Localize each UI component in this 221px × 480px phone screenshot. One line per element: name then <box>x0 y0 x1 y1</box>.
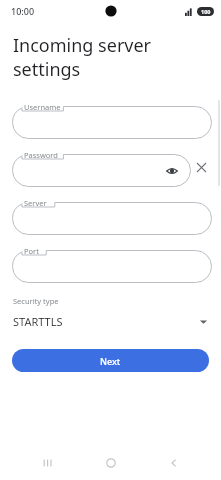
button[interactable]: Server <box>12 195 212 235</box>
button[interactable]: Username <box>12 99 212 139</box>
button[interactable]: Password <box>12 147 191 187</box>
staticText: Password <box>24 150 58 160</box>
button[interactable]: Port <box>12 243 212 283</box>
staticText: Server <box>24 198 47 208</box>
staticText: Next <box>100 355 121 367</box>
button[interactable]: Security type <box>0 296 221 329</box>
button[interactable]: Back <box>157 446 191 480</box>
staticText: STARTTLS <box>13 314 63 329</box>
staticText: 100 <box>201 8 211 15</box>
staticText: 10:00 <box>11 5 35 17</box>
button[interactable]: Home <box>94 446 128 480</box>
other: Expand security type <box>199 317 208 326</box>
staticText: Security type <box>13 296 59 306</box>
staticText: Incoming server settings <box>13 33 152 81</box>
staticText: Username <box>24 102 61 112</box>
button[interactable]: Clear <box>191 157 212 178</box>
staticText: Port <box>24 246 39 256</box>
button[interactable]: Recents <box>30 446 64 480</box>
button[interactable]: Next <box>12 349 209 372</box>
button[interactable]: Show password <box>164 163 180 179</box>
